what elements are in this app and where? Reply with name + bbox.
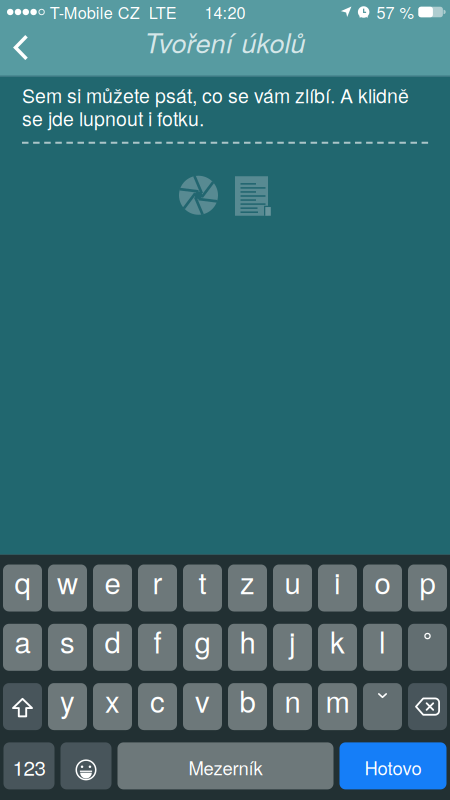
button[interactable]: h (228, 624, 267, 671)
staticText: h (239, 620, 255, 662)
button[interactable]: s (48, 624, 87, 671)
staticText: l (379, 620, 386, 662)
staticText: z (240, 560, 255, 602)
button[interactable]: g (183, 624, 222, 671)
button[interactable]: Emoji (60, 742, 111, 789)
button[interactable]: l (363, 624, 402, 671)
staticText: x (105, 679, 120, 721)
button[interactable]: n (273, 683, 312, 730)
staticText: b (239, 679, 255, 721)
button[interactable]: e (93, 564, 132, 611)
staticText: Tvoření úkolů (144, 23, 305, 61)
staticText: i (334, 560, 341, 602)
staticText: j (289, 620, 296, 662)
button[interactable]: q (3, 564, 42, 611)
button[interactable]: y (48, 683, 87, 730)
button[interactable]: Delete (408, 683, 447, 730)
staticText: g (194, 620, 210, 662)
button[interactable]: p (408, 564, 447, 611)
button[interactable]: d (93, 624, 132, 671)
staticText: 14:20 (204, 0, 245, 24)
button[interactable]: f (138, 624, 177, 671)
button[interactable]: z (228, 564, 267, 611)
button[interactable]: Hotovo (339, 742, 446, 789)
staticText: Mezerník (188, 754, 262, 780)
button[interactable]: Mezerník (117, 742, 333, 789)
button[interactable]: i (318, 564, 357, 611)
button[interactable]: r (138, 564, 177, 611)
button[interactable]: Caron diacritic (363, 683, 402, 730)
button[interactable]: t (183, 564, 222, 611)
staticText: t (198, 560, 206, 602)
staticText: e (104, 560, 120, 602)
staticText: d (104, 620, 120, 662)
staticText: Sem si můžete psát, co se vám zlíbí. A k… (22, 81, 409, 109)
staticText: f (153, 620, 161, 662)
button[interactable]: j (273, 624, 312, 671)
button[interactable]: b (228, 683, 267, 730)
staticText: 123 (12, 752, 45, 782)
staticText: o (374, 560, 390, 602)
staticText: Hotovo (364, 754, 421, 780)
staticText: v (195, 679, 210, 721)
staticText: c (150, 679, 165, 721)
button[interactable]: m (318, 683, 357, 730)
button[interactable]: Shift (3, 683, 42, 730)
staticText: T-Mobile CZ (50, 0, 140, 24)
staticText: q (14, 560, 30, 602)
button[interactable]: a (3, 624, 42, 671)
button[interactable]: k (318, 624, 357, 671)
button[interactable]: Ring diacritic (408, 624, 447, 671)
button[interactable]: Add note (235, 175, 271, 216)
button[interactable]: Take photo (179, 176, 218, 215)
staticText: LTE (149, 0, 177, 24)
staticText: se jde lupnout i fotku. (22, 104, 204, 132)
button[interactable]: o (363, 564, 402, 611)
button[interactable]: v (183, 683, 222, 730)
button[interactable]: 123 (3, 742, 54, 789)
staticText: n (284, 679, 300, 721)
staticText: p (419, 560, 435, 602)
staticText: s (60, 620, 75, 662)
staticText: a (14, 620, 30, 662)
button[interactable]: x (93, 683, 132, 730)
staticText: u (284, 560, 300, 602)
staticText: r (152, 560, 162, 602)
button[interactable]: u (273, 564, 312, 611)
staticText: 57 % (376, 0, 413, 24)
button[interactable]: w (48, 564, 87, 611)
staticText: w (57, 560, 78, 602)
button[interactable]: c (138, 683, 177, 730)
button[interactable]: Back (0, 24, 28, 75)
staticText: y (60, 679, 75, 721)
staticText: k (330, 620, 345, 662)
staticText: m (325, 679, 349, 721)
